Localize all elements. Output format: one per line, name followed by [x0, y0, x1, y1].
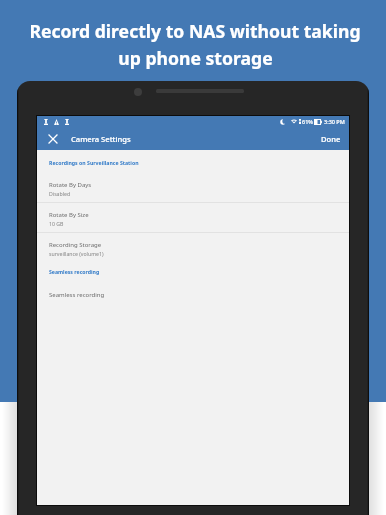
staticText: Seamless recording: [49, 291, 105, 299]
staticText: Rotate By Days: [49, 181, 92, 189]
button[interactable]: Rotate By Days: [37, 172, 349, 202]
button[interactable]: Seamless recording: [37, 282, 349, 306]
staticText: 10 GB: [49, 220, 64, 227]
staticText: Record directly to NAS without taking: [29, 19, 361, 43]
staticText: surveillance (volume1): [49, 250, 104, 257]
staticText: Seamless recording: [49, 268, 100, 275]
staticText: 3:30 PM: [324, 118, 345, 125]
staticText: up phone storage: [118, 46, 273, 70]
staticText: Done: [321, 134, 341, 144]
staticText: Camera Settings: [71, 134, 131, 144]
staticText: 61%: [302, 118, 313, 125]
staticText: Disabled: [49, 190, 71, 197]
button[interactable]: Rotate By Size: [37, 202, 349, 232]
button[interactable]: Done: [313, 127, 349, 150]
staticText: Recordings on Surveillance Station: [49, 159, 139, 166]
button[interactable]: Close: [37, 127, 69, 150]
staticText: Recording Storage: [49, 241, 102, 249]
staticText: Rotate By Size: [49, 211, 89, 219]
button[interactable]: Recording Storage: [37, 232, 349, 262]
